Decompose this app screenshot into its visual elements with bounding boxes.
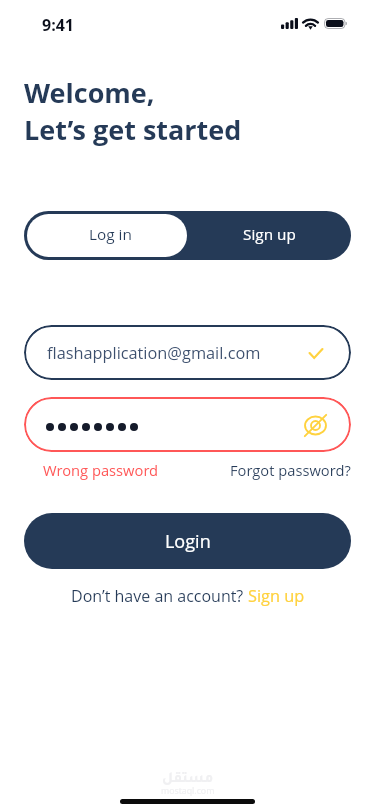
- staticText: Let’s get started: [24, 111, 242, 148]
- staticText: mostaql.com: [161, 785, 215, 797]
- staticText: Wrong password: [43, 460, 159, 480]
- staticText: Sign up: [243, 224, 296, 245]
- staticText: Don’t have an account?: [71, 585, 248, 607]
- staticText: Login: [165, 529, 211, 554]
- button[interactable]: flashapplication@gmail.com: [24, 325, 351, 380]
- button[interactable]: Show password: [24, 397, 351, 452]
- button[interactable]: Forgot password?: [230, 460, 351, 480]
- button[interactable]: Show password: [301, 411, 329, 439]
- button[interactable]: Login: [24, 513, 351, 569]
- button[interactable]: Log in: [27, 214, 187, 257]
- staticText: مستقل: [162, 772, 214, 787]
- staticText: Log in: [89, 224, 132, 245]
- button[interactable]: Sign up: [187, 211, 351, 260]
- button[interactable]: Sign up: [248, 585, 305, 607]
- staticText: flashapplication@gmail.com: [47, 342, 305, 364]
- button[interactable]: Email verified: [305, 342, 327, 364]
- staticText: 9:41: [42, 14, 74, 36]
- staticText: Welcome,: [24, 74, 155, 111]
